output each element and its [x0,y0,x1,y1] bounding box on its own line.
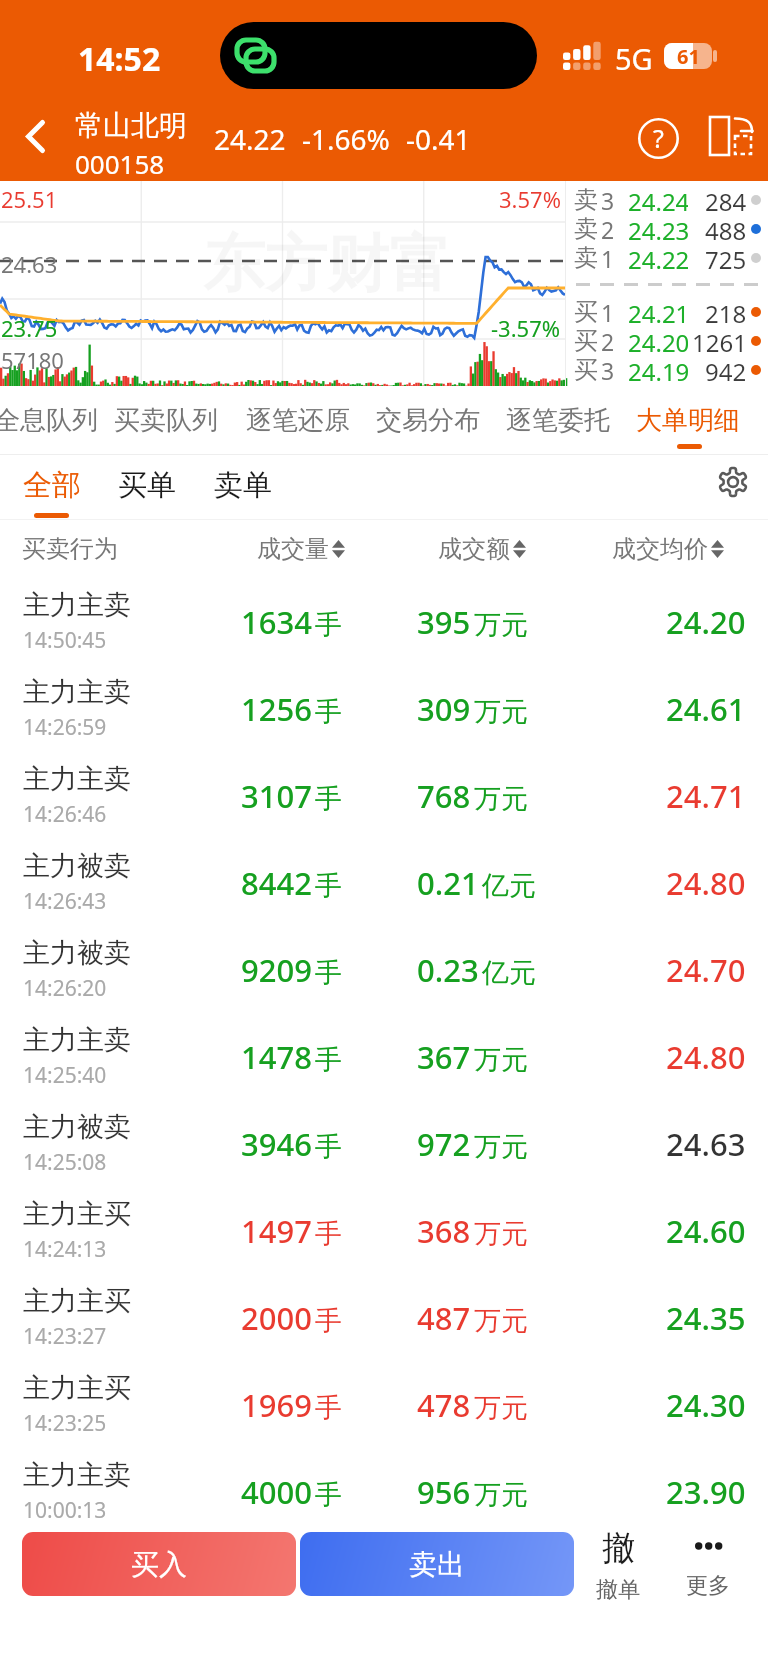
button[interactable]: Back [10,108,62,160]
button[interactable]: Help [632,112,684,164]
staticText: 亿元 [482,956,536,990]
staticText: 3 [601,185,615,214]
staticText: 725 [705,243,747,272]
button[interactable]: Split screen [700,110,756,162]
staticText: 487 [417,1297,471,1339]
staticText: 2 [601,326,615,355]
staticText: 23.75 [1,313,58,343]
button[interactable]: 主力主买 [0,1187,768,1274]
button[interactable]: 主力主卖 [0,665,768,752]
staticText: 万元 [474,782,528,816]
button[interactable]: 全部 [23,455,81,516]
staticText: 24.30 [666,1384,746,1426]
staticText: 57180 [1,345,64,375]
staticText: 万元 [474,1304,528,1338]
staticText: 买卖行为 [22,534,118,564]
staticText: 24.70 [666,949,746,991]
button[interactable]: 逐笔还原 [246,386,350,455]
staticText: 交易分布 [376,404,480,437]
staticText: 手 [315,782,342,816]
staticText: 284 [705,185,747,214]
button[interactable]: 逐笔委托 [506,386,610,455]
button[interactable]: 成交均价 [612,528,724,570]
staticText: 卖 [574,243,598,272]
staticText: 9209 [241,949,312,991]
staticText: 488 [705,214,747,243]
staticText: 24.35 [666,1297,746,1339]
staticText: 更多 [686,1572,730,1600]
button[interactable]: Settings [709,458,757,506]
button[interactable]: 主力主买 [0,1274,768,1361]
button[interactable]: 卖单 [214,455,272,516]
staticText: 主力被卖 [23,1110,131,1144]
staticText: 大单明细 [636,404,740,437]
staticText: 万元 [474,1043,528,1077]
staticText: 主力主卖 [23,588,131,622]
staticText: 万元 [474,608,528,642]
staticText: 14:25:08 [23,1148,107,1177]
staticText: 主力主卖 [23,1023,131,1057]
staticText: 手 [315,1130,342,1164]
staticText: 24.63 [666,1123,746,1165]
button[interactable]: 交易分布 [376,386,480,455]
button[interactable]: 大单明细 [636,386,740,455]
button[interactable]: 主力被卖 [0,1100,768,1187]
staticText: 手 [315,608,342,642]
button[interactable]: 主力被卖 [0,839,768,926]
button[interactable]: 主力主卖 [0,1448,768,1535]
staticText: 24.60 [666,1210,746,1252]
staticText: 成交量 [257,534,329,564]
button[interactable]: 成交量 [257,528,345,570]
button[interactable]: More [669,1527,747,1600]
staticText: 61 [677,43,700,69]
staticText: 卖单 [214,467,272,504]
button[interactable]: 主力主买 [0,1361,768,1448]
staticText: 14:24:13 [23,1235,107,1264]
staticText: 买单 [118,467,176,504]
staticText: 亿元 [482,869,536,903]
staticText: 14:26:59 [23,713,107,742]
staticText: 24.63 [1,249,58,279]
button[interactable]: 主力主卖 [0,752,768,839]
button[interactable]: 买入 [22,1532,296,1596]
button[interactable]: 主力主卖 [0,1013,768,1100]
button[interactable]: 成交额 [438,528,526,570]
staticText: 全息队列 [0,404,98,437]
staticText: 撤单 [596,1576,640,1604]
staticText: ? [653,121,664,155]
button[interactable]: 主力主卖 [0,578,768,665]
staticText: 主力主买 [23,1371,131,1405]
button[interactable]: 全息队列 [0,386,98,455]
staticText: 撤 [602,1527,635,1569]
button[interactable]: 买卖队列 [114,386,218,455]
staticText: 3946 [241,1123,312,1165]
button[interactable]: 买单 [118,455,176,516]
staticText: 万元 [474,1130,528,1164]
staticText: 主力被卖 [23,936,131,970]
staticText: 手 [315,1304,342,1338]
staticText: 卖出 [409,1547,465,1582]
staticText: 卖 [574,185,598,214]
staticText: -1.66% [302,120,390,158]
staticText: 2000 [241,1297,312,1339]
button[interactable]: 撤 [579,1527,657,1604]
staticText: 3.57% [499,184,561,214]
staticText: 买卖队列 [114,404,218,437]
staticText: 24.71 [666,775,746,817]
staticText: 24.80 [666,1036,746,1078]
staticText: 手 [315,695,342,729]
staticText: 万元 [474,1478,528,1512]
button[interactable]: 卖出 [300,1532,574,1596]
staticText: 24.19 [628,355,688,384]
staticText: 1 [601,243,615,272]
staticText: 14:26:46 [23,800,107,829]
staticText: 手 [315,869,342,903]
staticText: 常山北明 [75,108,187,143]
staticText: 367 [417,1036,471,1078]
button[interactable]: 主力被卖 [0,926,768,1013]
staticText: 1 [601,297,615,326]
staticText: 24.20 [628,326,688,355]
staticText: 万元 [474,1217,528,1251]
staticText: 309 [417,688,471,730]
staticText: 3 [601,355,615,384]
